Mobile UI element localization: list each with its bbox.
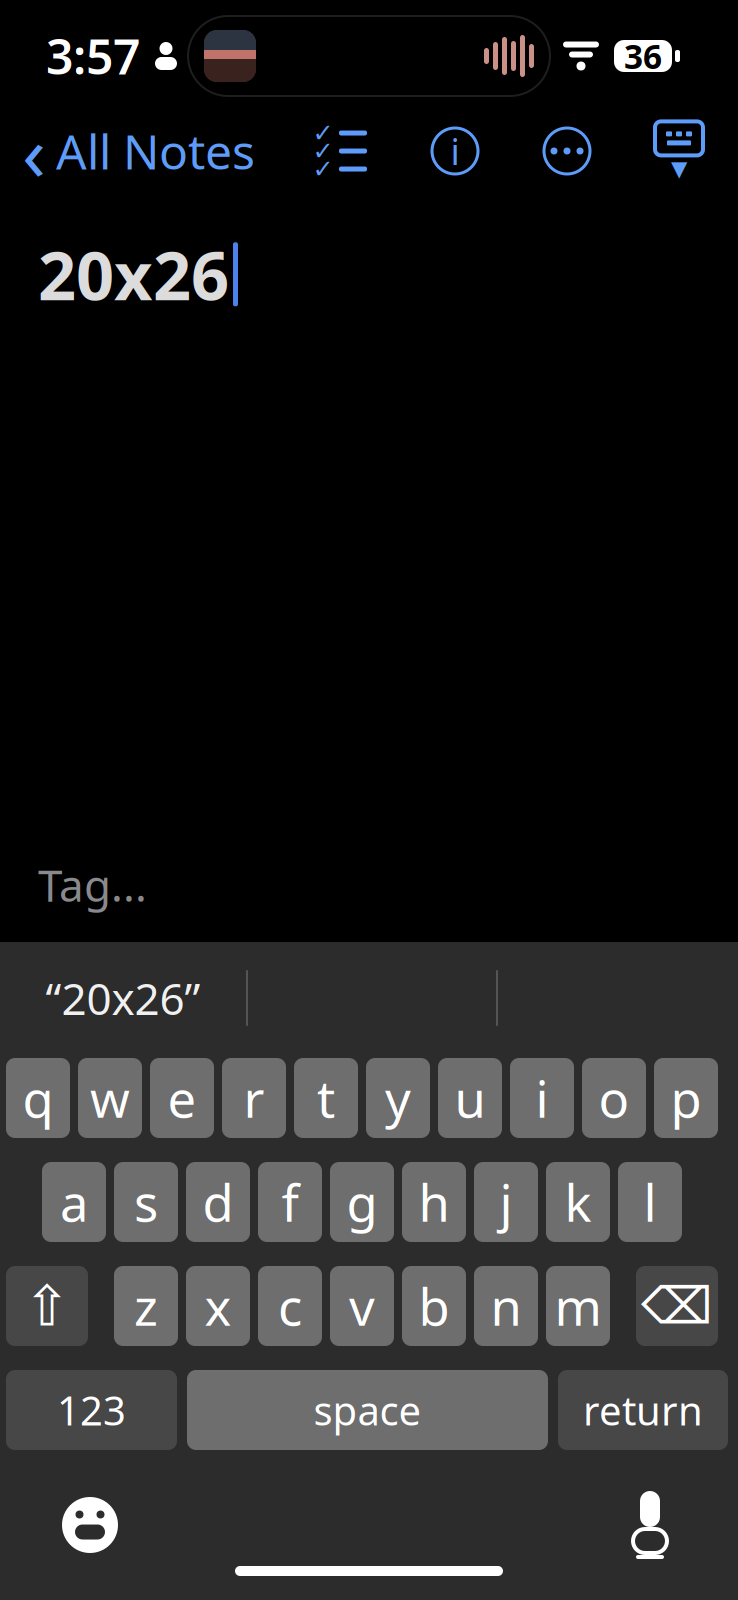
staticText: o xyxy=(598,1064,629,1132)
button[interactable]: u xyxy=(438,1058,502,1138)
staticText: All Notes xyxy=(56,119,255,183)
button[interactable]: f xyxy=(258,1162,322,1242)
staticText: “20x26” xyxy=(45,969,200,1027)
staticText: p xyxy=(670,1064,701,1132)
button[interactable]: Shift xyxy=(6,1266,88,1346)
staticText: g xyxy=(346,1168,377,1236)
button[interactable]: d xyxy=(186,1162,250,1242)
staticText: 36 xyxy=(624,34,662,78)
button[interactable]: x xyxy=(186,1266,250,1346)
button[interactable]: space xyxy=(187,1370,548,1450)
button[interactable]: t xyxy=(294,1058,358,1138)
button[interactable]: Info xyxy=(422,118,488,184)
staticText: return xyxy=(583,1383,703,1436)
staticText: i xyxy=(535,1064,548,1132)
staticText: ✓ xyxy=(312,155,333,183)
button[interactable]: w xyxy=(78,1058,142,1138)
staticText: Tag... xyxy=(38,856,147,914)
button[interactable]: 123 xyxy=(6,1370,177,1450)
button[interactable]: k xyxy=(546,1162,610,1242)
button[interactable]: v xyxy=(330,1266,394,1346)
staticText: ▼ xyxy=(671,156,687,181)
button[interactable]: Checklist xyxy=(306,119,376,183)
button[interactable]: c xyxy=(258,1266,322,1346)
staticText: t xyxy=(317,1064,335,1132)
button[interactable]: s xyxy=(114,1162,178,1242)
button[interactable]: o xyxy=(582,1058,646,1138)
button[interactable]: y xyxy=(366,1058,430,1138)
button[interactable]: e xyxy=(150,1058,214,1138)
staticText: e xyxy=(167,1064,196,1132)
button[interactable]: g xyxy=(330,1162,394,1242)
button[interactable]: Emoji keyboard xyxy=(44,1479,136,1571)
button[interactable]: q xyxy=(6,1058,70,1138)
staticText: s xyxy=(134,1168,158,1236)
staticText: d xyxy=(202,1168,233,1236)
staticText: q xyxy=(22,1064,53,1132)
staticText: l xyxy=(643,1168,656,1236)
staticText: y xyxy=(385,1064,411,1132)
staticText: z xyxy=(134,1272,158,1340)
staticText: x xyxy=(204,1272,231,1340)
staticText: ⇧ xyxy=(23,1274,70,1338)
staticText: i xyxy=(450,127,459,175)
staticText: a xyxy=(60,1168,88,1236)
button[interactable]: More options xyxy=(534,118,600,184)
staticText: v xyxy=(349,1272,375,1340)
staticText: f xyxy=(281,1168,298,1236)
staticText: j xyxy=(499,1168,512,1236)
button[interactable]: l xyxy=(618,1162,682,1242)
button[interactable]: a xyxy=(42,1162,106,1242)
button[interactable]: h xyxy=(402,1162,466,1242)
button[interactable]: m xyxy=(546,1266,610,1346)
staticText: ⌫ xyxy=(641,1277,713,1335)
staticText: ‹ xyxy=(22,100,46,202)
button[interactable]: b xyxy=(402,1266,466,1346)
button[interactable]: z xyxy=(114,1266,178,1346)
staticText: r xyxy=(243,1064,264,1132)
button[interactable]: Hide keyboard xyxy=(646,116,712,186)
staticText: h xyxy=(418,1168,449,1236)
staticText: 123 xyxy=(57,1383,126,1436)
staticText: 20x26 xyxy=(38,230,229,318)
staticText: n xyxy=(490,1272,521,1340)
button[interactable]: r xyxy=(222,1058,286,1138)
staticText: c xyxy=(278,1272,302,1340)
staticText: 3:57 xyxy=(46,24,140,88)
staticText: b xyxy=(418,1272,449,1340)
button[interactable]: i xyxy=(510,1058,574,1138)
button[interactable]: “20x26” xyxy=(0,942,246,1054)
button[interactable]: return xyxy=(558,1370,728,1450)
button[interactable]: ‹ xyxy=(0,94,255,208)
staticText: ✓ xyxy=(312,137,333,165)
button[interactable]: Dictate xyxy=(614,1474,686,1576)
button[interactable]: n xyxy=(474,1266,538,1346)
staticText: w xyxy=(90,1064,130,1132)
staticText: space xyxy=(313,1383,421,1436)
staticText: ✓ xyxy=(312,119,333,147)
staticText: u xyxy=(454,1064,485,1132)
button[interactable]: j xyxy=(474,1162,538,1242)
button[interactable]: p xyxy=(654,1058,718,1138)
button[interactable]: Delete xyxy=(636,1266,718,1346)
staticText: m xyxy=(554,1272,601,1340)
staticText: k xyxy=(564,1168,591,1236)
